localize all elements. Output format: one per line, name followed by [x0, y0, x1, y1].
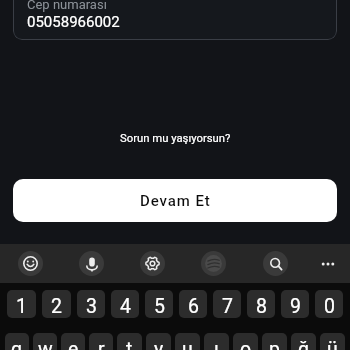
staticText: p [269, 338, 280, 350]
button[interactable]: Cep numarası [13, 0, 337, 40]
button[interactable]: r [89, 333, 113, 350]
staticText: 3 [86, 295, 97, 318]
button[interactable]: p [262, 333, 287, 350]
button[interactable]: Stickers [194, 244, 232, 283]
staticText: 4 [120, 295, 131, 318]
button[interactable]: Devam Et [13, 179, 337, 222]
staticText: 9 [290, 295, 301, 318]
button[interactable]: q [5, 333, 29, 350]
button[interactable]: Keyboard settings [133, 244, 171, 283]
staticText: 5 [154, 295, 165, 318]
staticText: Devam Et [140, 192, 211, 210]
button[interactable]: u [175, 333, 200, 350]
staticText: q [11, 338, 23, 350]
staticText: Cep numarası [27, 0, 107, 12]
button[interactable]: 9 [281, 290, 309, 318]
staticText: 6 [188, 295, 199, 318]
staticText: 8 [256, 295, 267, 318]
button[interactable]: 0 [315, 290, 343, 318]
button[interactable]: y [146, 333, 171, 350]
button[interactable]: o [233, 333, 258, 350]
button[interactable]: More options [308, 244, 346, 283]
staticText: 1 [16, 295, 27, 318]
button[interactable]: 8 [247, 290, 275, 318]
button[interactable]: 6 [179, 290, 207, 318]
button[interactable]: Sorun mu yaşıyorsun? [0, 129, 350, 148]
staticText: 7 [222, 295, 233, 318]
staticText: u [182, 338, 193, 350]
staticText: e [68, 338, 79, 350]
button[interactable]: 3 [77, 290, 105, 318]
staticText: ı [214, 338, 219, 350]
staticText: r [98, 338, 105, 350]
button[interactable]: Search [256, 244, 294, 283]
staticText: ü [327, 338, 338, 350]
staticText: o [240, 338, 252, 350]
button[interactable]: e [61, 333, 85, 350]
button[interactable]: ğ [291, 333, 316, 350]
button[interactable]: w [33, 333, 57, 350]
button[interactable]: 1 [7, 290, 36, 318]
staticText: w [38, 338, 53, 350]
button[interactable]: 7 [213, 290, 241, 318]
button[interactable]: ı [204, 333, 229, 350]
button[interactable]: 4 [111, 290, 139, 318]
staticText: 05058966002 [27, 13, 120, 31]
button[interactable]: t [117, 333, 142, 350]
button[interactable]: Emoji [11, 244, 49, 283]
button[interactable]: 5 [145, 290, 173, 318]
staticText: y [154, 338, 164, 350]
staticText: 0 [324, 295, 335, 318]
staticText: t [126, 338, 133, 350]
staticText: ğ [298, 338, 309, 350]
button[interactable]: 2 [42, 290, 71, 318]
button[interactable]: Voice input [72, 244, 110, 283]
staticText: 2 [51, 295, 62, 318]
button[interactable]: ü [320, 333, 345, 350]
staticText: Sorun mu yaşıyorsun? [120, 132, 231, 145]
